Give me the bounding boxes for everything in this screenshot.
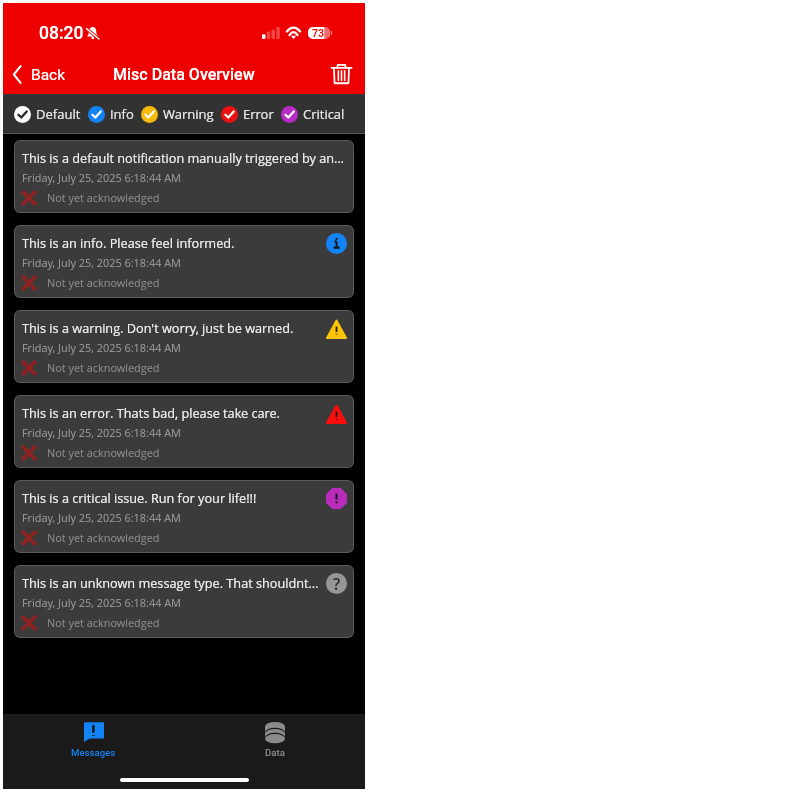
staticText: ? bbox=[333, 573, 341, 594]
staticText: Not yet acknowledged bbox=[47, 530, 160, 545]
staticText: This is an info. Please feel informed. bbox=[22, 234, 348, 251]
staticText: Error bbox=[243, 105, 274, 123]
button[interactable]: This is an unknown message type. That sh… bbox=[14, 565, 354, 638]
staticText: Friday, July 25, 2025 6:18:44 AM bbox=[22, 340, 181, 355]
staticText: Not yet acknowledged bbox=[47, 275, 160, 290]
button[interactable]: Data bbox=[184, 714, 365, 764]
staticText: Not yet acknowledged bbox=[47, 190, 160, 205]
staticText: Critical bbox=[303, 105, 345, 123]
staticText: Info bbox=[110, 105, 134, 123]
staticText: This is a critical issue. Run for your l… bbox=[22, 489, 348, 506]
button[interactable]: Delete all notifications bbox=[317, 55, 365, 94]
button[interactable]: Default bbox=[14, 100, 81, 128]
staticText: Not yet acknowledged bbox=[47, 445, 160, 460]
button[interactable]: Info bbox=[88, 100, 134, 128]
button[interactable]: Messages bbox=[3, 714, 184, 764]
button[interactable]: This is an info. Please feel informed. bbox=[14, 225, 354, 298]
button[interactable]: Back bbox=[3, 59, 76, 90]
staticText: Friday, July 25, 2025 6:18:44 AM bbox=[22, 595, 181, 610]
staticText: Misc Data Overview bbox=[113, 65, 255, 84]
staticText: This is a warning. Don't worry, just be … bbox=[22, 319, 348, 336]
staticText: 08:20 bbox=[39, 23, 84, 44]
staticText: Friday, July 25, 2025 6:18:44 AM bbox=[22, 170, 181, 185]
staticText: Messages bbox=[71, 747, 116, 758]
button[interactable]: Critical bbox=[281, 100, 345, 128]
button[interactable]: This is a warning. Don't worry, just be … bbox=[14, 310, 354, 383]
button[interactable]: This is an error. Thats bad, please take… bbox=[14, 395, 354, 468]
button[interactable]: This is a critical issue. Run for your l… bbox=[14, 480, 354, 553]
staticText: This is an error. Thats bad, please take… bbox=[22, 404, 348, 421]
staticText: Default bbox=[36, 105, 81, 123]
staticText: Back bbox=[31, 66, 66, 84]
staticText: This is a default notification manually … bbox=[22, 149, 348, 166]
staticText: Data bbox=[265, 747, 285, 758]
staticText: Not yet acknowledged bbox=[47, 615, 160, 630]
button[interactable]: Warning bbox=[141, 100, 214, 128]
button[interactable]: Error bbox=[221, 100, 274, 128]
button[interactable]: This is a default notification manually … bbox=[14, 140, 354, 213]
staticText: 73 bbox=[312, 27, 325, 39]
staticText: Not yet acknowledged bbox=[47, 360, 160, 375]
staticText: Friday, July 25, 2025 6:18:44 AM bbox=[22, 425, 181, 440]
staticText: Friday, July 25, 2025 6:18:44 AM bbox=[22, 255, 181, 270]
staticText: This is an unknown message type. That sh… bbox=[22, 574, 348, 591]
staticText: Warning bbox=[163, 105, 214, 123]
staticText: Friday, July 25, 2025 6:18:44 AM bbox=[22, 510, 181, 525]
